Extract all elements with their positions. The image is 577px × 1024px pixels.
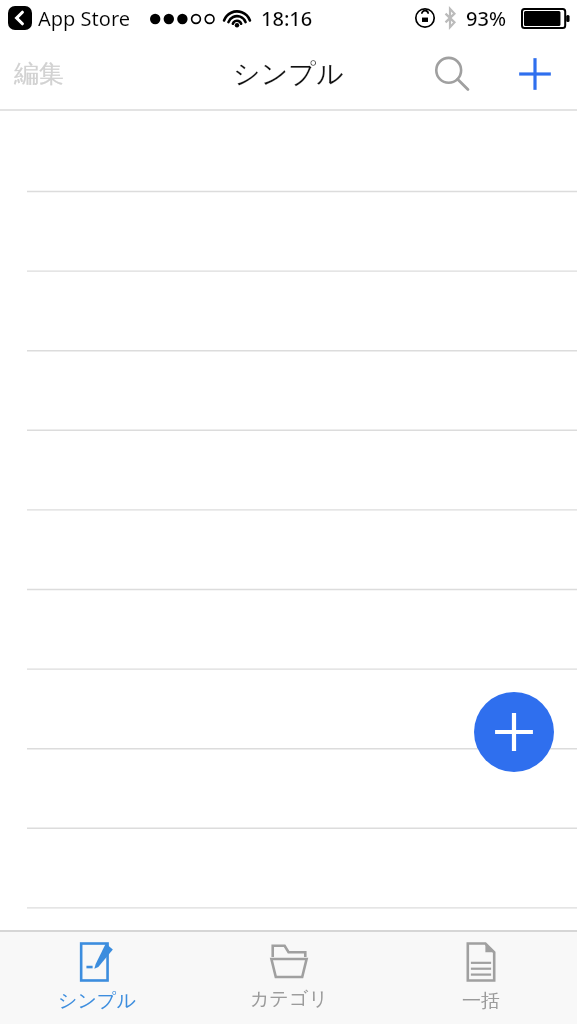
staticText: シンプル — [58, 989, 136, 1013]
staticText: 93% — [466, 5, 506, 32]
button[interactable]: 編集 — [14, 58, 64, 89]
staticText: 編集 — [14, 58, 64, 89]
staticText: 18:16 — [261, 5, 313, 32]
button[interactable]: Add — [511, 50, 559, 98]
button[interactable]: カテゴリ — [193, 932, 385, 1024]
staticText: カテゴリ — [250, 987, 328, 1011]
staticText: シンプル — [233, 57, 344, 91]
button[interactable]: Search — [428, 51, 474, 97]
staticText: 一括 — [462, 989, 500, 1013]
button[interactable]: 一括 — [385, 932, 577, 1024]
button[interactable]: シンプル — [0, 932, 193, 1024]
button[interactable]: New note — [474, 692, 554, 772]
button[interactable]: Back to App Store — [8, 6, 32, 30]
staticText: App Store — [38, 5, 131, 32]
